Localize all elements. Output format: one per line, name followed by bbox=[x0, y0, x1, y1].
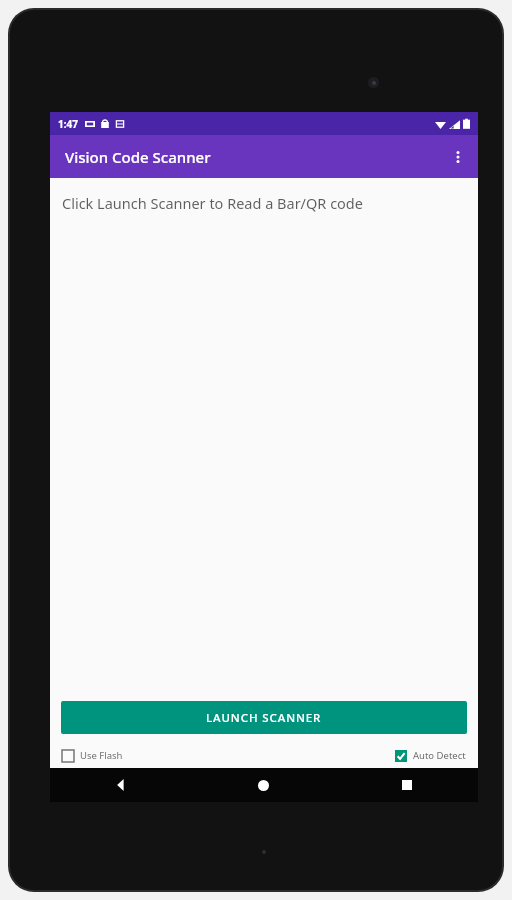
staticText: Auto Detect bbox=[413, 749, 466, 762]
button[interactable]: Auto Detect bbox=[395, 749, 466, 762]
button[interactable]: LAUNCH SCANNER bbox=[61, 701, 467, 734]
button[interactable]: More options bbox=[438, 137, 478, 177]
button[interactable]: Home bbox=[192, 768, 335, 802]
staticText: LAUNCH SCANNER bbox=[206, 710, 322, 726]
button[interactable]: Back bbox=[50, 768, 192, 802]
button[interactable]: Recent apps bbox=[335, 768, 478, 802]
staticText: Click Launch Scanner to Read a Bar/QR co… bbox=[62, 193, 363, 213]
staticText: Vision Code Scanner bbox=[65, 147, 211, 167]
staticText: Use Flash bbox=[80, 749, 123, 762]
button[interactable]: Use Flash bbox=[62, 749, 123, 762]
staticText: 1:47 bbox=[58, 117, 78, 131]
